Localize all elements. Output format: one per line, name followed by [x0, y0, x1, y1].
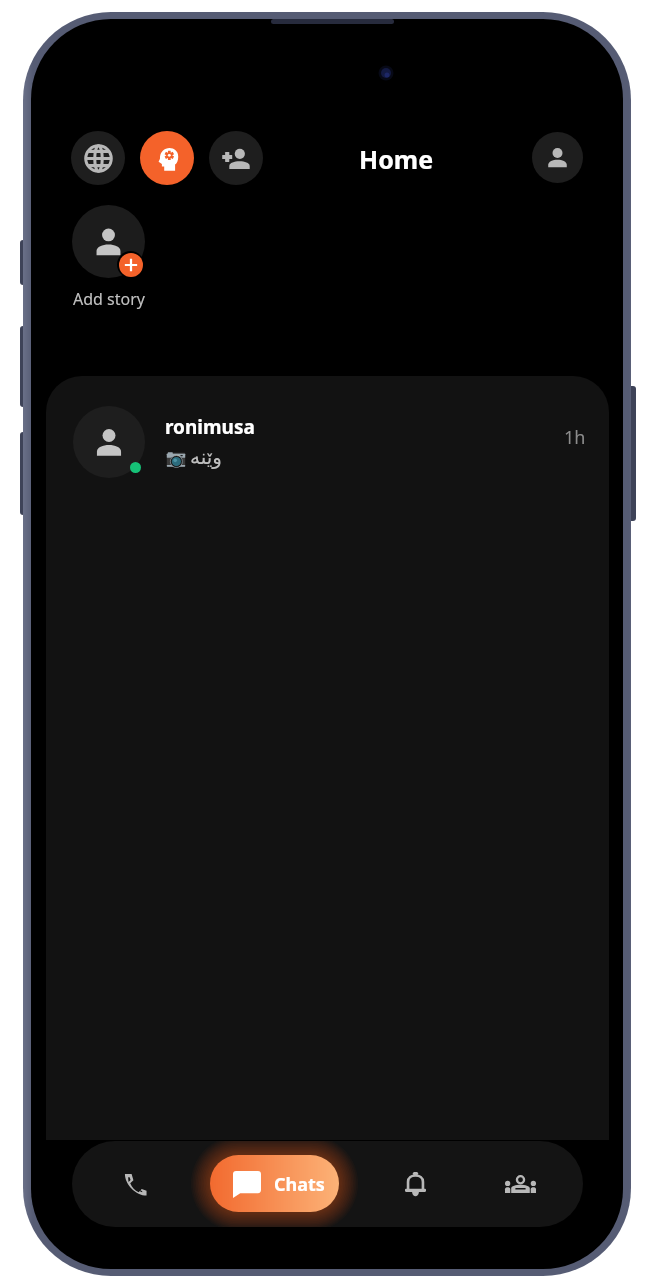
- button[interactable]: Add friend: [209, 131, 263, 185]
- button[interactable]: ronimusa: [46, 376, 609, 506]
- staticText: ronimusa: [165, 414, 255, 440]
- button[interactable]: Add story: [72, 205, 145, 278]
- button[interactable]: AI Assistant: [140, 131, 194, 185]
- staticText: وێنه: [190, 445, 222, 468]
- button[interactable]: Notifications: [387, 1157, 443, 1213]
- button[interactable]: Groups: [492, 1156, 548, 1212]
- staticText: Home: [359, 142, 434, 176]
- staticText: Chats: [274, 1172, 325, 1197]
- button[interactable]: Calls: [107, 1156, 163, 1212]
- staticText: Add story: [73, 288, 145, 310]
- button[interactable]: Chats: [210, 1155, 339, 1212]
- staticText: 1h: [564, 425, 586, 450]
- button[interactable]: Language: [71, 131, 125, 185]
- button[interactable]: Profile: [532, 132, 583, 183]
